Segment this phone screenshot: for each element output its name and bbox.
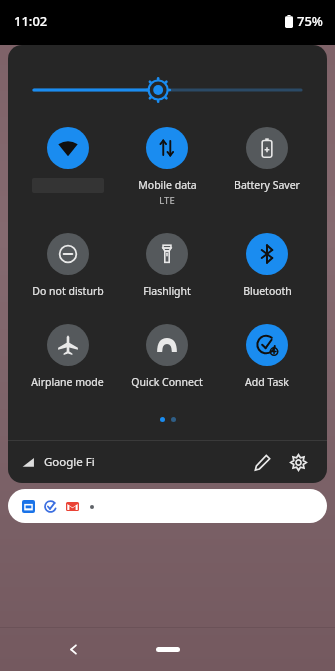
button[interactable]: Airplane mode <box>18 322 117 391</box>
button[interactable]: Back <box>58 634 88 664</box>
staticText: Bluetooth <box>243 284 292 298</box>
button[interactable]: Google Fi <box>22 454 95 470</box>
staticText: Flashlight <box>143 284 191 298</box>
staticText: Mobile data <box>138 178 197 192</box>
button[interactable]: Wi-Fi <box>18 125 117 195</box>
button[interactable]: Settings <box>283 447 313 477</box>
staticText: 75% <box>297 12 323 30</box>
button[interactable]: Quick Connect <box>117 322 217 391</box>
staticText: 11:02 <box>14 12 48 30</box>
staticText: LTE <box>159 194 175 207</box>
button[interactable]: Add Task <box>217 322 317 391</box>
button[interactable]: Home <box>140 636 196 662</box>
button[interactable]: Notifications <box>8 489 327 523</box>
staticText: Airplane mode <box>31 375 104 389</box>
button[interactable]: Edit <box>247 447 277 477</box>
staticText: Google Fi <box>44 454 95 470</box>
button[interactable]: Battery Saver <box>217 125 317 194</box>
staticText: Add Task <box>245 375 289 389</box>
staticText: Battery Saver <box>234 178 300 192</box>
button[interactable]: Do not disturb <box>18 231 117 300</box>
button[interactable]: Flashlight <box>117 231 217 300</box>
button[interactable]: Mobile data <box>117 125 217 209</box>
staticText: Do not disturb <box>32 284 104 298</box>
staticText: Quick Connect <box>131 375 203 389</box>
button[interactable]: Bluetooth <box>217 231 317 300</box>
button[interactable]: Brightness <box>34 79 301 101</box>
